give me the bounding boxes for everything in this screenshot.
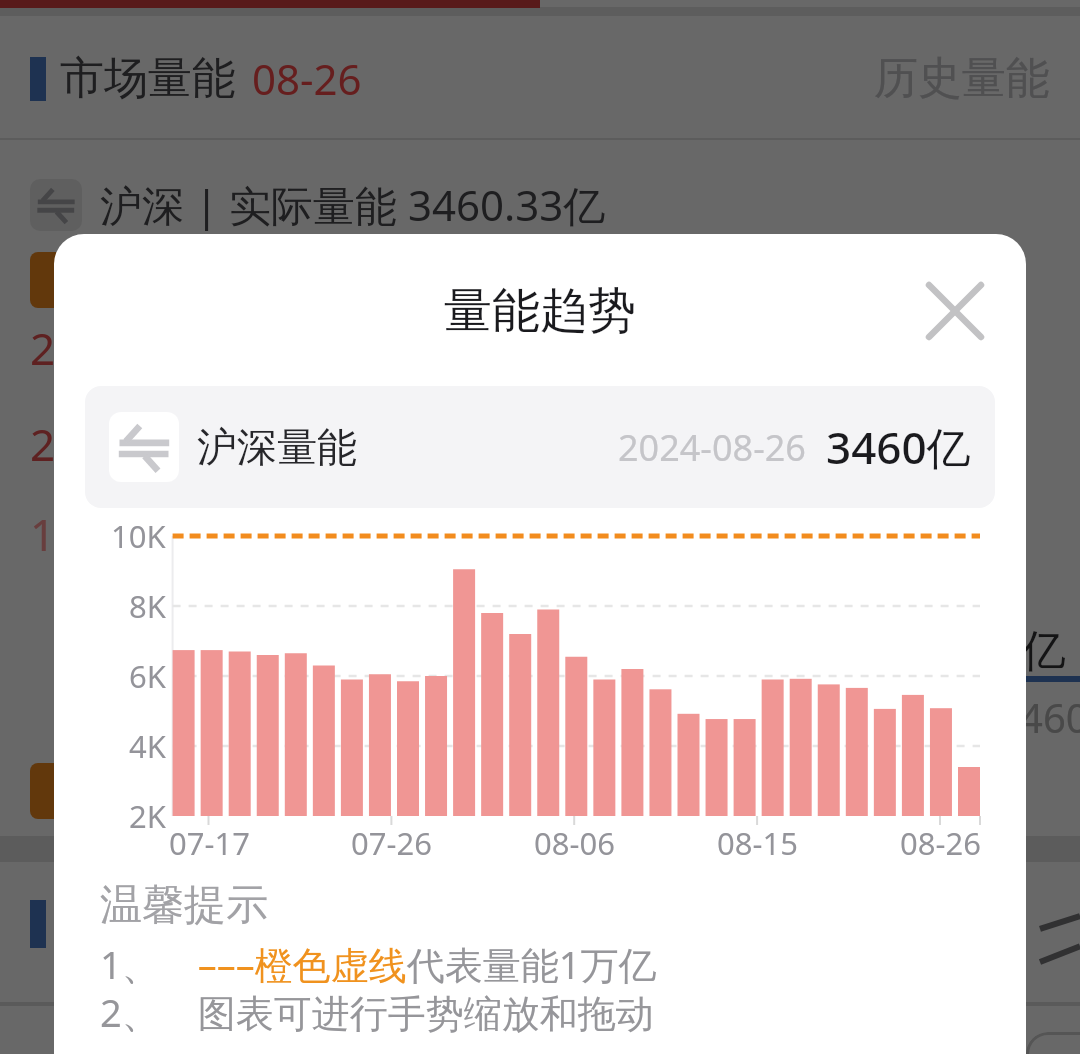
staticText: 07-26: [351, 822, 432, 864]
button[interactable]: 历史量能: [874, 51, 1050, 106]
staticText: 4600: [1020, 690, 1080, 744]
staticText: 8K: [129, 585, 166, 627]
staticText: 2874.33: [30, 414, 193, 474]
button[interactable]: [910, 266, 1000, 356]
staticText: 沪深 | 实际量能 3460.33亿: [100, 176, 606, 233]
staticText: 亿: [1022, 624, 1066, 679]
staticText: 历史量能: [874, 51, 1050, 106]
staticText: 市场量能: [60, 51, 236, 106]
staticText: 08-06: [534, 822, 615, 864]
staticText: 6K: [129, 655, 166, 697]
staticText: 1、 –––橙色虚线代表量能1万亿: [100, 938, 657, 990]
staticText: 量能趋势: [444, 281, 636, 341]
staticText: 08-15: [717, 822, 798, 864]
staticText: 07-17: [169, 822, 250, 864]
staticText: 08-26: [900, 822, 981, 864]
staticText: 08-26: [252, 50, 362, 107]
staticText: 温馨提示: [100, 879, 268, 932]
staticText: 3460亿: [826, 417, 971, 477]
staticText: 1.02%: [30, 504, 154, 564]
staticText: 2882.11: [30, 318, 193, 378]
staticText: 10K: [111, 515, 166, 557]
staticText: 2024-08-26: [618, 423, 806, 472]
staticText: 4K: [129, 725, 166, 767]
staticText: 2、 图表可进行手势缩放和拖动: [100, 986, 654, 1038]
staticText: 2K: [129, 795, 166, 837]
staticText: 沪深量能: [197, 422, 357, 472]
